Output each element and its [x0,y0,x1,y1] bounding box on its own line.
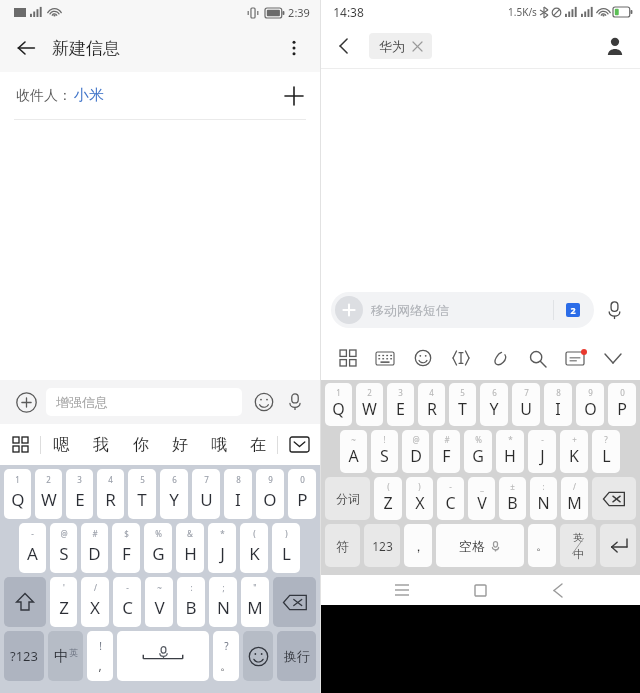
button[interactable]: Home [441,575,519,605]
button[interactable]: " [241,577,269,627]
button[interactable]: ， [404,524,432,567]
button[interactable]: Backspace [592,477,636,520]
button[interactable]: 在 [238,424,277,465]
button[interactable]: ' [50,577,77,627]
button[interactable]: 中 [48,631,83,681]
button[interactable]: Collapse [594,336,632,380]
button[interactable]: Back [519,575,597,605]
button[interactable]: 0 [288,469,316,519]
button[interactable]: + [560,430,588,473]
button[interactable]: ?123 [4,631,44,681]
button[interactable]: 4 [97,469,124,519]
button[interactable]: Keyboard [366,336,404,380]
button[interactable]: 符 [325,524,360,567]
button[interactable]: Emoji [248,386,280,418]
button[interactable]: @ [50,523,77,573]
button[interactable]: 好 [160,424,199,465]
button[interactable]: 1 [4,469,31,519]
button[interactable]: _ [468,477,495,520]
button[interactable]: Back [325,27,363,65]
button[interactable]: % [464,430,492,473]
button[interactable]: 6 [160,469,188,519]
button[interactable]: ) [406,477,433,520]
button[interactable]: 7 [512,383,540,426]
button[interactable]: 123 [364,524,400,567]
button[interactable]: * [496,430,524,473]
button[interactable]: % [144,523,172,573]
button[interactable]: 5 [449,383,476,426]
button[interactable]: 0 [608,383,636,426]
button[interactable]: 2 [35,469,62,519]
button[interactable]: 移动网络短信 [331,292,594,328]
button[interactable]: 。 [528,524,556,567]
button[interactable]: Backspace [273,577,316,627]
button[interactable]: 换行 [277,631,316,681]
button[interactable]: ± [499,477,526,520]
button[interactable]: $ [112,523,140,573]
button[interactable]: ; [209,577,237,627]
button[interactable]: ( [374,477,402,520]
button[interactable]: - [437,477,464,520]
button[interactable]: - [19,523,46,573]
button[interactable]: 增强信息 [46,388,242,416]
button[interactable]: 你 [121,424,160,465]
button[interactable]: 收件人： [0,72,320,119]
button[interactable]: - [528,430,556,473]
button[interactable]: Back [6,28,46,68]
button[interactable]: ! [87,631,113,681]
button[interactable]: ~ [145,577,173,627]
button[interactable]: 3 [387,383,414,426]
button[interactable]: Voice message [594,290,634,330]
button[interactable]: Emoji [243,631,273,681]
button[interactable]: 4 [418,383,445,426]
button[interactable]: 2 [356,383,383,426]
button[interactable]: Card [556,336,594,380]
button[interactable]: Text style [442,336,480,380]
button[interactable]: 1 [325,383,352,426]
button[interactable]: 8 [224,469,252,519]
button[interactable]: Recents [363,575,441,605]
button[interactable]: # [433,430,460,473]
button[interactable]: - [113,577,141,627]
button[interactable]: Keyboard menu [0,424,40,465]
button[interactable]: 5 [128,469,156,519]
button[interactable]: ) [272,523,300,573]
button[interactable]: 哦 [199,424,238,465]
button[interactable]: 3 [66,469,93,519]
button[interactable]: 9 [576,383,604,426]
button[interactable]: Voice input [280,387,310,417]
button[interactable]: 9 [256,469,284,519]
button[interactable]: 我 [81,424,121,465]
button[interactable]: Shift [4,577,46,627]
button[interactable]: 华为 [369,33,432,59]
button[interactable]: # [81,523,108,573]
button[interactable]: 8 [544,383,572,426]
button[interactable]: 嗯 [41,424,81,465]
button[interactable]: ? [592,430,620,473]
button[interactable]: Search [518,336,556,380]
button[interactable]: Space [117,631,209,681]
button[interactable]: * [208,523,236,573]
button[interactable]: More options [274,28,314,68]
button[interactable]: / [81,577,109,627]
button[interactable]: / [561,477,588,520]
button[interactable]: Apps [329,336,366,380]
button[interactable]: ( [240,523,268,573]
button[interactable]: Contact details [596,27,634,65]
button[interactable]: : [530,477,557,520]
button[interactable]: Emoji [404,336,442,380]
button[interactable]: 分词 [325,477,370,520]
button[interactable]: 7 [192,469,220,519]
button[interactable]: Add contact [274,76,314,116]
button[interactable]: ~ [340,430,367,473]
button[interactable]: Collapse [278,424,320,465]
button[interactable]: Enter [600,524,636,567]
button[interactable]: 空格 [436,524,524,567]
button[interactable]: Add attachment [10,386,42,418]
button[interactable]: 英 [560,524,596,567]
button[interactable]: Attach [480,336,518,380]
button[interactable]: ? [213,631,239,681]
button[interactable]: : [177,577,205,627]
button[interactable]: ! [371,430,398,473]
button[interactable]: & [176,523,204,573]
